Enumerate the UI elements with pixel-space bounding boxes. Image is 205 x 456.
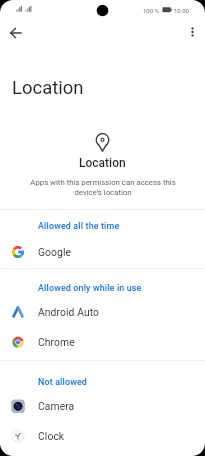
button[interactable] bbox=[6, 23, 26, 43]
staticText: Allowed all the time bbox=[38, 221, 120, 231]
staticText: Location bbox=[12, 77, 84, 99]
staticText: Not allowed bbox=[38, 377, 88, 387]
staticText: Clock bbox=[38, 430, 65, 442]
button[interactable]: Google bbox=[0, 237, 205, 267]
staticText: Allowed only while in use bbox=[38, 283, 142, 293]
staticText: Chrome bbox=[38, 336, 75, 348]
staticText: Location bbox=[79, 156, 126, 170]
button[interactable]: Clock bbox=[0, 421, 205, 451]
staticText: 100 % bbox=[143, 7, 159, 14]
button[interactable] bbox=[183, 23, 202, 42]
staticText: Android Auto bbox=[38, 306, 100, 318]
button[interactable]: Android Auto bbox=[0, 297, 205, 327]
staticText: Camera bbox=[38, 400, 75, 412]
staticText: Apps with this permission can access thi… bbox=[30, 178, 176, 197]
staticText: 10:00 bbox=[174, 7, 189, 14]
button[interactable]: Camera bbox=[0, 391, 205, 421]
button[interactable]: Chrome bbox=[0, 327, 205, 357]
staticText: Google bbox=[38, 246, 72, 258]
